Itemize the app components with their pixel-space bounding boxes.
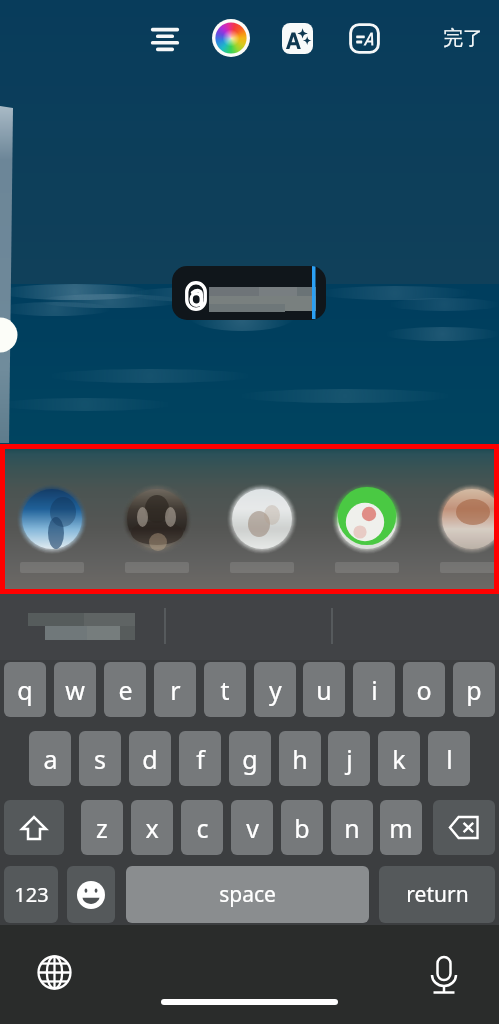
staticText: p xyxy=(466,673,482,707)
button[interactable] xyxy=(0,444,499,594)
button[interactable]: Voice input xyxy=(421,948,467,994)
staticText: f xyxy=(196,742,205,776)
staticText: e xyxy=(118,673,133,707)
button[interactable]: i xyxy=(353,662,395,717)
staticText: a xyxy=(43,742,58,776)
button[interactable]: o xyxy=(403,662,445,717)
button[interactable]: z xyxy=(81,800,123,855)
button[interactable]: m xyxy=(380,800,422,855)
button[interactable]: w xyxy=(54,662,96,717)
staticText: return xyxy=(406,880,469,909)
staticText: k xyxy=(392,742,406,776)
staticText: w xyxy=(65,673,85,707)
button[interactable] xyxy=(172,266,326,320)
button[interactable]: k xyxy=(378,731,420,786)
button[interactable]: d xyxy=(129,731,171,786)
staticText: u xyxy=(316,673,332,707)
staticText: y xyxy=(269,673,282,707)
button[interactable]: Backspace xyxy=(433,800,495,855)
button[interactable]: 123 xyxy=(4,866,58,923)
button[interactable]: n xyxy=(331,800,373,855)
button[interactable]: e xyxy=(104,662,146,717)
staticText: q xyxy=(17,673,33,707)
button[interactable]: Auto capitalisation xyxy=(338,12,390,64)
staticText: m xyxy=(389,811,413,845)
button[interactable]: Text alignment xyxy=(139,12,191,64)
button[interactable]: c xyxy=(181,800,223,855)
staticText: j xyxy=(346,742,353,776)
button[interactable]: j xyxy=(328,731,370,786)
button[interactable]: q xyxy=(4,662,46,717)
staticText: n xyxy=(344,811,360,845)
staticText: s xyxy=(94,742,106,776)
staticText: h xyxy=(292,742,308,776)
button[interactable]: Colour picker xyxy=(205,12,257,64)
button[interactable]: a xyxy=(29,731,71,786)
button[interactable]: y xyxy=(254,662,296,717)
button[interactable]: l xyxy=(428,731,470,786)
staticText: r xyxy=(170,673,181,707)
staticText: i xyxy=(371,673,378,707)
staticText: 完了 xyxy=(443,26,483,51)
button[interactable]: 完了 xyxy=(432,14,494,62)
staticText: g xyxy=(242,742,258,776)
staticText: x xyxy=(145,811,159,845)
staticText: z xyxy=(96,811,108,845)
button[interactable]: s xyxy=(79,731,121,786)
button[interactable]: v xyxy=(231,800,273,855)
button[interactable]: p xyxy=(453,662,495,717)
button[interactable]: space xyxy=(126,866,369,923)
button[interactable]: b xyxy=(281,800,323,855)
button[interactable]: f xyxy=(179,731,221,786)
button[interactable]: g xyxy=(229,731,271,786)
button[interactable]: Emoji xyxy=(67,866,115,923)
button[interactable]: u xyxy=(303,662,345,717)
button[interactable]: t xyxy=(204,662,246,717)
button[interactable]: r xyxy=(154,662,196,717)
staticText: space xyxy=(219,880,276,909)
button[interactable]: Text effects xyxy=(271,12,323,64)
staticText: o xyxy=(416,673,432,707)
button[interactable]: return xyxy=(379,866,495,923)
staticText: 123 xyxy=(14,881,49,908)
staticText: v xyxy=(246,811,259,845)
staticText: d xyxy=(142,742,158,776)
staticText: l xyxy=(446,742,453,776)
button[interactable]: x xyxy=(131,800,173,855)
button[interactable]: h xyxy=(279,731,321,786)
staticText: c xyxy=(196,811,209,845)
staticText: b xyxy=(294,811,310,845)
button[interactable]: Change keyboard language xyxy=(31,949,77,995)
staticText: t xyxy=(220,673,230,707)
button[interactable]: Shift xyxy=(4,800,64,855)
